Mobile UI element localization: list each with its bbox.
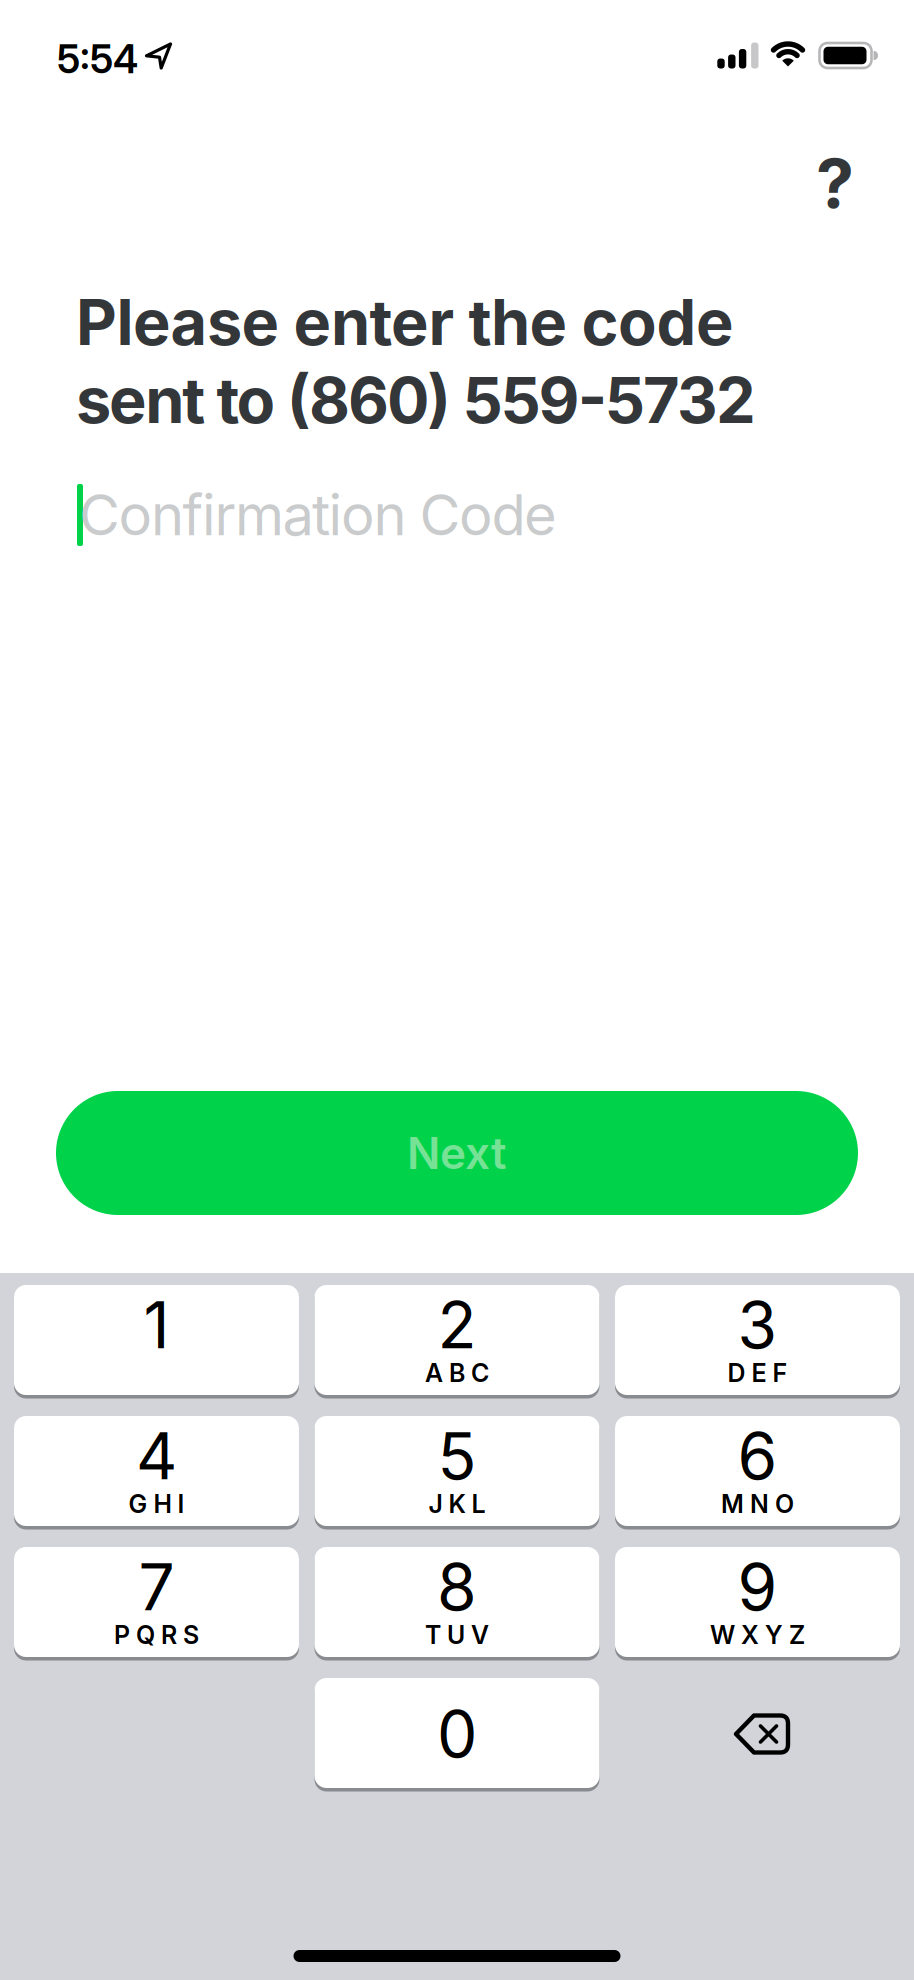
staticText: M N O [721,1489,794,1519]
staticText: 5 [437,1417,476,1495]
staticText: sent to (860) 559-5732 [76,362,756,438]
staticText: 2 [437,1286,476,1364]
staticText: J K L [428,1489,485,1519]
button[interactable]: 5 [314,1416,599,1528]
staticText: 0 [437,1695,477,1773]
staticText: P Q R S [114,1620,199,1650]
staticText: G H I [128,1489,184,1519]
staticText: ? [816,142,854,224]
staticText: 8 [437,1548,477,1626]
button[interactable]: 6 [615,1416,900,1528]
staticText: 6 [737,1417,777,1495]
button[interactable]: 3 [615,1285,900,1397]
button[interactable]: 1 [14,1285,299,1397]
button[interactable]: 9 [615,1547,900,1659]
staticText: T U V [425,1620,489,1650]
staticText: D E F [727,1358,787,1388]
button[interactable]: 4 [14,1416,299,1528]
staticText: 3 [737,1286,777,1364]
staticText: 4 [136,1417,177,1495]
button[interactable]: 0 [314,1678,599,1790]
button[interactable]: 8 [314,1547,599,1659]
staticText: 1 [143,1286,169,1364]
staticText: 5:54 [57,35,138,83]
staticText: W X Y Z [710,1620,805,1650]
button[interactable]: 2 [314,1285,599,1397]
staticText: Next [407,1126,507,1180]
staticText: A B C [425,1358,489,1388]
button[interactable]: Delete [707,1678,817,1790]
staticText: Confirmation Code [79,481,557,549]
staticText: 7 [138,1548,174,1626]
staticText: Please enter the code [76,284,734,360]
button[interactable]: Help [795,143,875,223]
button[interactable]: 7 [14,1547,299,1659]
staticText: 9 [737,1548,777,1626]
button[interactable]: Next [56,1091,858,1215]
